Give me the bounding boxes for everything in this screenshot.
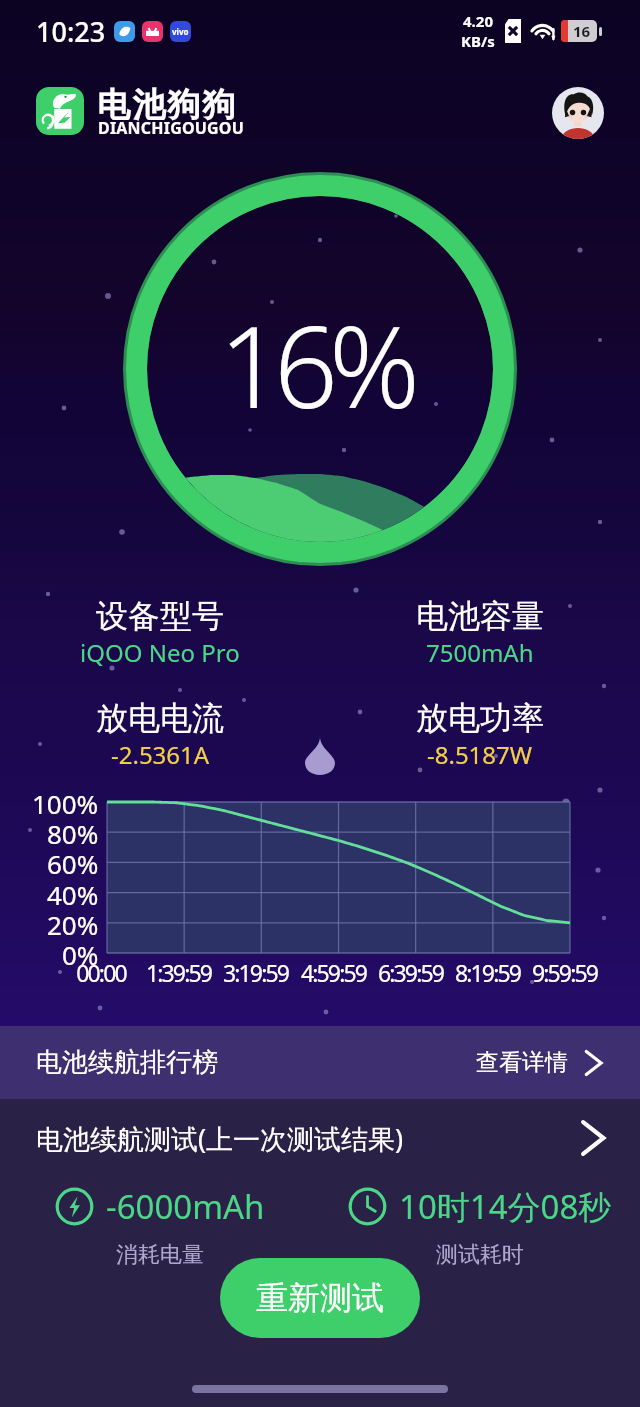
staticText: 100% — [32, 786, 99, 818]
staticText: 60% — [47, 846, 99, 878]
staticText: 电池狗狗 — [97, 84, 238, 126]
staticText: 6:39:59 — [378, 957, 443, 988]
staticText: -6000mAh — [106, 1184, 265, 1229]
staticText: 10时14分08秒 — [399, 1184, 612, 1229]
staticText: 3:19:59 — [223, 957, 288, 988]
staticText: -8.5187W — [427, 738, 533, 771]
staticText: vivo — [172, 26, 189, 37]
staticText: 重新测试 — [256, 1278, 384, 1318]
staticText: 0% — [62, 937, 99, 969]
staticText: 放电功率 — [416, 698, 544, 738]
staticText: 查看详情 — [476, 1048, 568, 1077]
button[interactable]: 电池续航排行榜 — [0, 1026, 640, 1099]
staticText: 1:39:59 — [146, 957, 211, 988]
staticText: 4.20 — [463, 11, 493, 31]
staticText: 10:23 — [36, 13, 106, 50]
staticText: 80% — [47, 816, 99, 848]
staticText: DIANCHIGOUGOU — [98, 117, 245, 139]
staticText: 消耗电量 — [116, 1241, 204, 1269]
button[interactable]: 电池续航测试(上一次测试结果) — [0, 1099, 640, 1177]
staticText: -2.5361A — [111, 738, 210, 771]
staticText: 电池续航测试(上一次测试结果) — [36, 1120, 404, 1157]
button[interactable]: 重新测试 — [220, 1258, 420, 1338]
staticText: 9:59:59 — [532, 957, 597, 988]
staticText: 放电电流 — [96, 698, 224, 738]
staticText: 00:00 — [76, 957, 126, 988]
staticText: 设备型号 — [96, 596, 224, 636]
staticText: 40% — [47, 877, 99, 909]
staticText: 20% — [47, 907, 99, 939]
staticText: iQOO Neo Pro — [80, 636, 240, 669]
staticText: 电池容量 — [416, 596, 544, 636]
button[interactable]: Profile — [552, 87, 604, 139]
staticText: 8:19:59 — [455, 957, 520, 988]
staticText: 4:59:59 — [301, 957, 366, 988]
staticText: 16 — [573, 21, 591, 41]
staticText: 7500mAh — [426, 636, 534, 669]
staticText: KB/s — [461, 31, 495, 51]
staticText: 16% — [219, 288, 411, 441]
staticText: 电池续航排行榜 — [36, 1046, 218, 1079]
staticText: 测试耗时 — [436, 1241, 524, 1269]
